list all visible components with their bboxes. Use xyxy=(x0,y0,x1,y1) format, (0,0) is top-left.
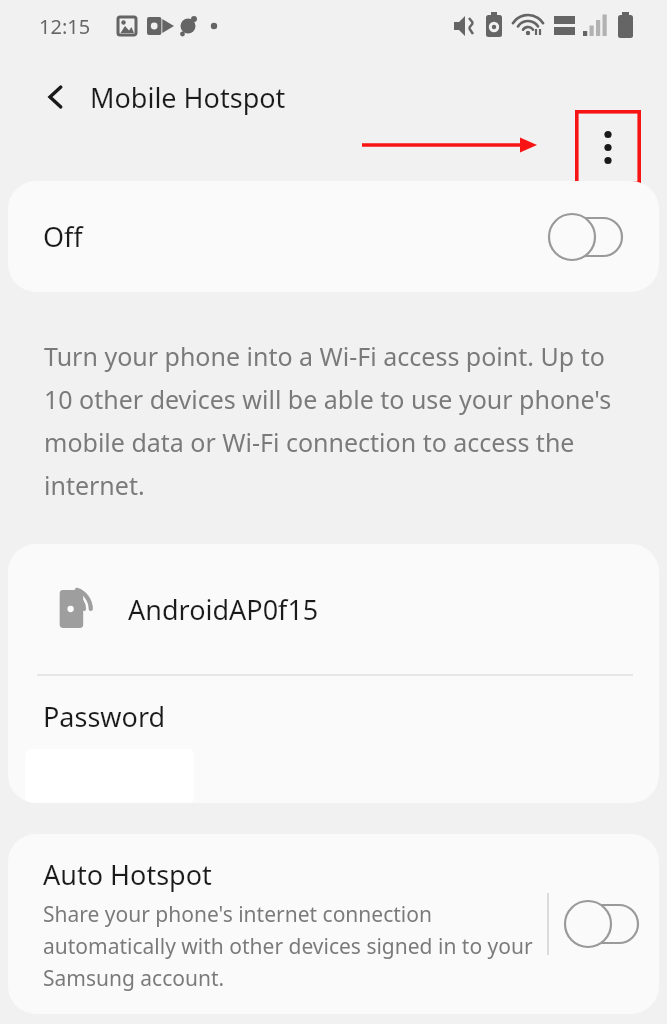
staticText: Turn your phone into a Wi-Fi access poin… xyxy=(44,339,623,502)
staticText: Mobile Hotspot xyxy=(90,79,286,116)
staticText: Off xyxy=(43,218,83,255)
staticText: AndroidAP0f15 xyxy=(128,591,319,628)
button[interactable]: Auto Hotspot xyxy=(43,856,537,992)
staticText: Share your phone's internet connection a… xyxy=(43,900,537,992)
button[interactable]: Auto Hotspot toggle xyxy=(561,901,639,947)
staticText: Auto Hotspot xyxy=(43,856,212,893)
staticText: 12:15 xyxy=(39,13,91,40)
staticText: Password xyxy=(43,698,166,735)
button[interactable]: Back xyxy=(28,69,84,125)
button[interactable]: Off xyxy=(8,181,659,292)
button[interactable]: More options xyxy=(575,110,641,185)
button[interactable]: Password xyxy=(8,676,659,803)
button[interactable]: AndroidAP0f15 xyxy=(8,544,659,674)
